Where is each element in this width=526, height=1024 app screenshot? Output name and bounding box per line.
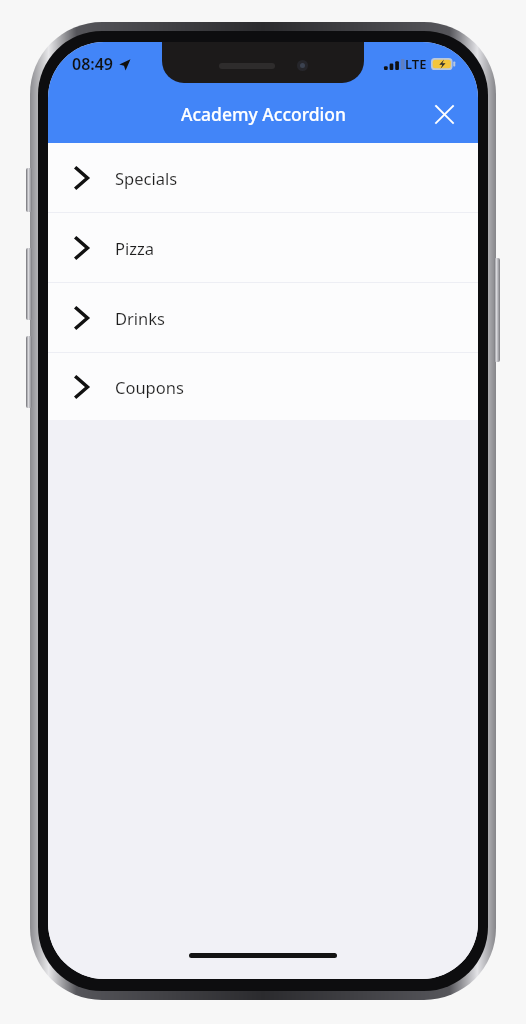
button[interactable]: Drinks <box>48 283 478 352</box>
button[interactable]: Specials <box>48 143 478 212</box>
staticText: Pizza <box>115 237 155 259</box>
button[interactable]: Pizza <box>48 213 478 282</box>
button[interactable]: Close <box>422 92 466 136</box>
button[interactable]: Coupons <box>48 353 478 420</box>
staticText: 08:49 <box>72 53 114 75</box>
staticText: Specials <box>115 167 178 189</box>
staticText: Drinks <box>115 307 166 329</box>
staticText: Academy Accordion <box>181 102 346 126</box>
staticText: LTE <box>405 55 427 73</box>
staticText: Coupons <box>115 376 184 398</box>
